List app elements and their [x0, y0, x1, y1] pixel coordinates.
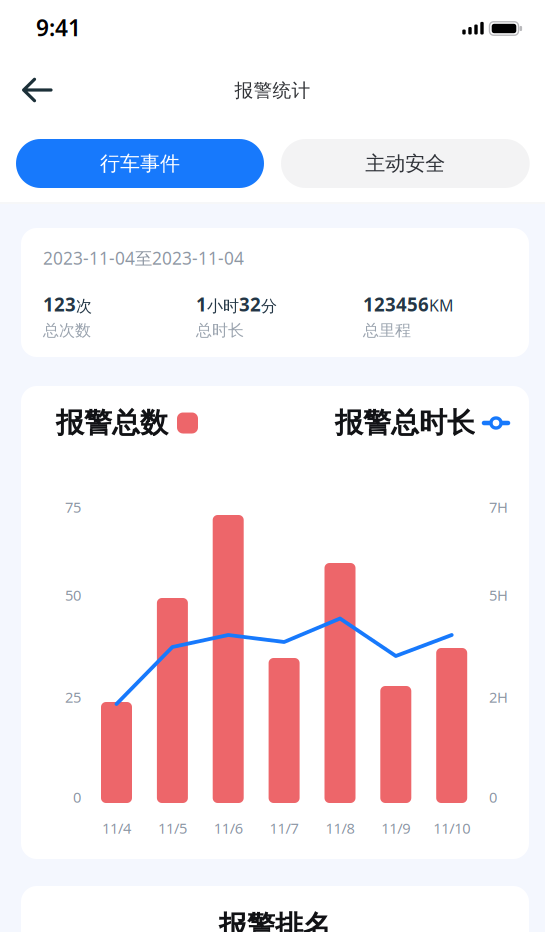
- button[interactable]: 主动安全: [281, 139, 530, 188]
- staticText: KM: [429, 295, 454, 316]
- staticText: 0: [489, 787, 497, 807]
- staticText: 11/8: [325, 818, 354, 838]
- staticText: 50: [65, 585, 81, 605]
- staticText: 5H: [489, 585, 508, 605]
- staticText: 25: [65, 687, 81, 707]
- button[interactable]: Back: [15, 72, 59, 108]
- staticText: 1: [196, 292, 207, 317]
- staticText: 11/6: [214, 818, 243, 838]
- staticText: 2H: [489, 687, 508, 707]
- staticText: 11/9: [381, 818, 410, 838]
- staticText: 11/7: [270, 818, 299, 838]
- staticText: 次: [76, 296, 92, 316]
- staticText: 总里程: [363, 321, 411, 340]
- staticText: 11/5: [158, 818, 187, 838]
- button[interactable]: 行车事件: [16, 139, 264, 188]
- staticText: 32: [239, 292, 261, 317]
- staticText: 总次数: [43, 321, 91, 340]
- staticText: 小时: [207, 296, 239, 316]
- staticText: 总时长: [196, 321, 244, 340]
- staticText: 报警总时长: [335, 406, 475, 440]
- staticText: 9:41: [36, 12, 81, 42]
- staticText: 2023-11-04至2023-11-04: [43, 246, 244, 269]
- staticText: 分: [261, 296, 277, 316]
- staticText: 123456: [363, 292, 429, 317]
- staticText: 11/4: [102, 818, 131, 838]
- staticText: 报警总数: [56, 406, 168, 440]
- staticText: 报警统计: [234, 79, 310, 102]
- staticText: 123: [43, 292, 76, 317]
- staticText: 0: [73, 787, 81, 807]
- staticText: 7H: [489, 497, 508, 517]
- staticText: 主动安全: [365, 151, 445, 176]
- staticText: 报警排名: [219, 909, 331, 932]
- staticText: 11/10: [433, 818, 470, 838]
- staticText: 75: [65, 497, 81, 517]
- staticText: 行车事件: [100, 151, 180, 176]
